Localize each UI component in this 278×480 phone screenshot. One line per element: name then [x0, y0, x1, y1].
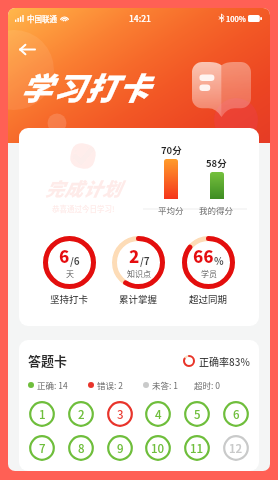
button[interactable]: 1	[29, 401, 55, 427]
button[interactable]: 9	[107, 435, 133, 461]
button[interactable]: 12	[223, 435, 249, 461]
staticText: 答题卡	[28, 351, 68, 370]
staticText: %	[214, 253, 224, 267]
staticText: 8	[78, 440, 85, 457]
staticText: 9	[117, 440, 124, 457]
staticText: 6	[233, 406, 240, 423]
staticText: 我的得分	[199, 204, 234, 216]
button[interactable]: 11	[184, 435, 210, 461]
button[interactable]: 5	[184, 401, 210, 427]
button[interactable]: 4	[145, 401, 171, 427]
staticText: 坚持打卡	[50, 292, 89, 306]
staticText: 1	[39, 406, 46, 423]
staticText: 平均分	[158, 204, 184, 216]
button[interactable]: 8	[68, 435, 94, 461]
staticText: 5	[194, 406, 201, 423]
button[interactable]: Back	[13, 35, 41, 63]
staticText: 7	[39, 440, 46, 457]
staticText: 2	[129, 243, 140, 268]
staticText: 66	[193, 243, 214, 268]
staticText: 累计掌握	[119, 292, 158, 306]
button[interactable]: 2	[68, 401, 94, 427]
staticText: 70分	[161, 143, 182, 157]
staticText: 学习打卡	[20, 64, 150, 109]
staticText: 恭喜通过今日学习!	[52, 203, 115, 214]
staticText: 学员	[201, 268, 217, 280]
staticText: 12	[229, 440, 243, 457]
staticText: 完成计划	[45, 175, 122, 202]
staticText: 10	[151, 440, 165, 457]
staticText: 知识点	[127, 268, 151, 280]
staticText: 4	[155, 406, 162, 423]
staticText: 100%	[226, 13, 246, 24]
button[interactable]: 7	[29, 435, 55, 461]
staticText: 6	[59, 243, 70, 268]
staticText: 58分	[206, 156, 227, 170]
button[interactable]: 10	[145, 435, 171, 461]
staticText: 正确: 14	[37, 379, 68, 391]
button[interactable]: 3	[107, 401, 133, 427]
staticText: 2	[78, 406, 85, 423]
button[interactable]: 6	[223, 401, 249, 427]
staticText: 正确率83%	[199, 354, 250, 368]
staticText: 11	[190, 440, 204, 457]
staticText: 未答: 1	[152, 379, 178, 391]
staticText: 3	[117, 406, 124, 423]
staticText: 中国联通	[27, 13, 57, 24]
staticText: 超时: 0	[194, 379, 220, 391]
staticText: /7	[140, 253, 150, 267]
staticText: 超过同期	[189, 292, 228, 306]
staticText: /6	[70, 253, 80, 267]
staticText: 14:21	[129, 12, 151, 24]
staticText: 错误: 2	[97, 379, 123, 391]
staticText: 天	[66, 268, 74, 280]
